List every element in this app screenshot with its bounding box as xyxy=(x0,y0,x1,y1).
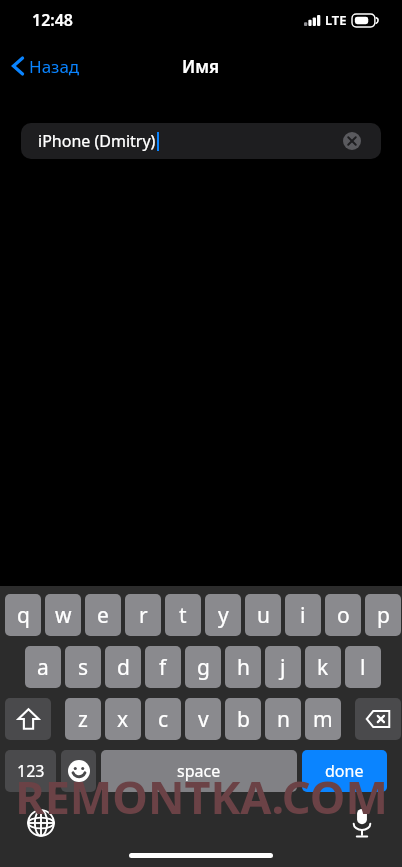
button[interactable]: s xyxy=(65,646,101,688)
button[interactable]: b xyxy=(225,698,261,740)
staticText: p xyxy=(377,601,390,630)
button[interactable]: t xyxy=(165,594,201,636)
button[interactable]: g xyxy=(185,646,221,688)
staticText: n xyxy=(277,705,290,734)
staticText: b xyxy=(237,705,250,734)
button[interactable]: iPhone (Dmitry) xyxy=(21,123,381,159)
staticText: w xyxy=(55,601,72,630)
button[interactable]: l xyxy=(345,646,381,688)
staticText: i xyxy=(300,601,306,630)
staticText: l xyxy=(360,653,366,682)
button[interactable]: space xyxy=(101,750,297,792)
button[interactable]: r xyxy=(125,594,161,636)
button[interactable]: Change keyboard language xyxy=(27,809,55,837)
staticText: v xyxy=(198,705,209,734)
staticText: x xyxy=(117,705,129,734)
button[interactable]: a xyxy=(25,646,61,688)
button[interactable]: v xyxy=(185,698,221,740)
button[interactable]: Backspace xyxy=(355,698,401,740)
staticText: j xyxy=(280,653,286,682)
button[interactable]: h xyxy=(225,646,261,688)
button[interactable]: Clear text xyxy=(343,132,361,150)
staticText: z xyxy=(78,705,88,734)
button[interactable]: Назад xyxy=(0,44,90,88)
staticText: Имя xyxy=(182,55,220,78)
button[interactable]: z xyxy=(65,698,101,740)
staticText: d xyxy=(117,653,130,682)
staticText: t xyxy=(179,601,187,630)
staticText: f xyxy=(159,653,167,682)
button[interactable]: n xyxy=(265,698,301,740)
staticText: iPhone (Dmitry) xyxy=(38,130,156,152)
button[interactable]: i xyxy=(285,594,321,636)
staticText: q xyxy=(17,601,30,630)
staticText: a xyxy=(37,653,49,682)
button[interactable]: done xyxy=(302,750,387,792)
button[interactable]: j xyxy=(265,646,301,688)
button[interactable]: 123 xyxy=(5,750,56,792)
staticText: o xyxy=(337,601,350,630)
button[interactable]: p xyxy=(365,594,401,636)
staticText: e xyxy=(97,601,109,630)
button[interactable]: c xyxy=(145,698,181,740)
staticText: u xyxy=(257,601,270,630)
button[interactable]: Emoji xyxy=(61,750,96,792)
staticText: m xyxy=(313,705,333,734)
button[interactable]: y xyxy=(205,594,241,636)
button[interactable]: w xyxy=(45,594,81,636)
button[interactable]: e xyxy=(85,594,121,636)
button[interactable]: x xyxy=(105,698,141,740)
staticText: r xyxy=(139,601,148,630)
staticText: y xyxy=(218,601,229,630)
button[interactable]: d xyxy=(105,646,141,688)
staticText: s xyxy=(78,653,89,682)
staticText: k xyxy=(317,653,329,682)
button[interactable]: Dictation xyxy=(349,807,375,839)
button[interactable]: Shift xyxy=(5,698,51,740)
staticText: c xyxy=(158,705,169,734)
staticText: Назад xyxy=(29,55,80,78)
staticText: LTE xyxy=(325,11,347,29)
button[interactable]: q xyxy=(5,594,41,636)
staticText: h xyxy=(237,653,250,682)
button[interactable]: m xyxy=(305,698,341,740)
staticText: 12:48 xyxy=(32,9,74,31)
button[interactable]: k xyxy=(305,646,341,688)
staticText: g xyxy=(197,653,210,682)
button[interactable]: f xyxy=(145,646,181,688)
button[interactable]: u xyxy=(245,594,281,636)
staticText: space xyxy=(177,760,221,782)
staticText: 123 xyxy=(17,760,45,782)
button[interactable]: o xyxy=(325,594,361,636)
staticText: done xyxy=(325,760,364,782)
staticText: REMONTKA.COM xyxy=(15,766,388,827)
